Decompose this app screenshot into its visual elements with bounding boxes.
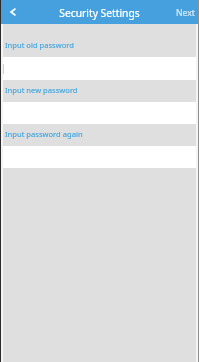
button[interactable]: Back [0, 0, 25, 24]
button[interactable] [0, 102, 199, 124]
staticText: Input old password [5, 40, 74, 50]
button[interactable] [0, 146, 199, 168]
staticText: Input password again [5, 129, 83, 139]
staticText: Next [176, 7, 195, 19]
button[interactable] [0, 57, 199, 80]
staticText: Security Settings [59, 6, 140, 20]
staticText: Input new password [5, 85, 78, 95]
button[interactable]: Next [170, 2, 199, 22]
